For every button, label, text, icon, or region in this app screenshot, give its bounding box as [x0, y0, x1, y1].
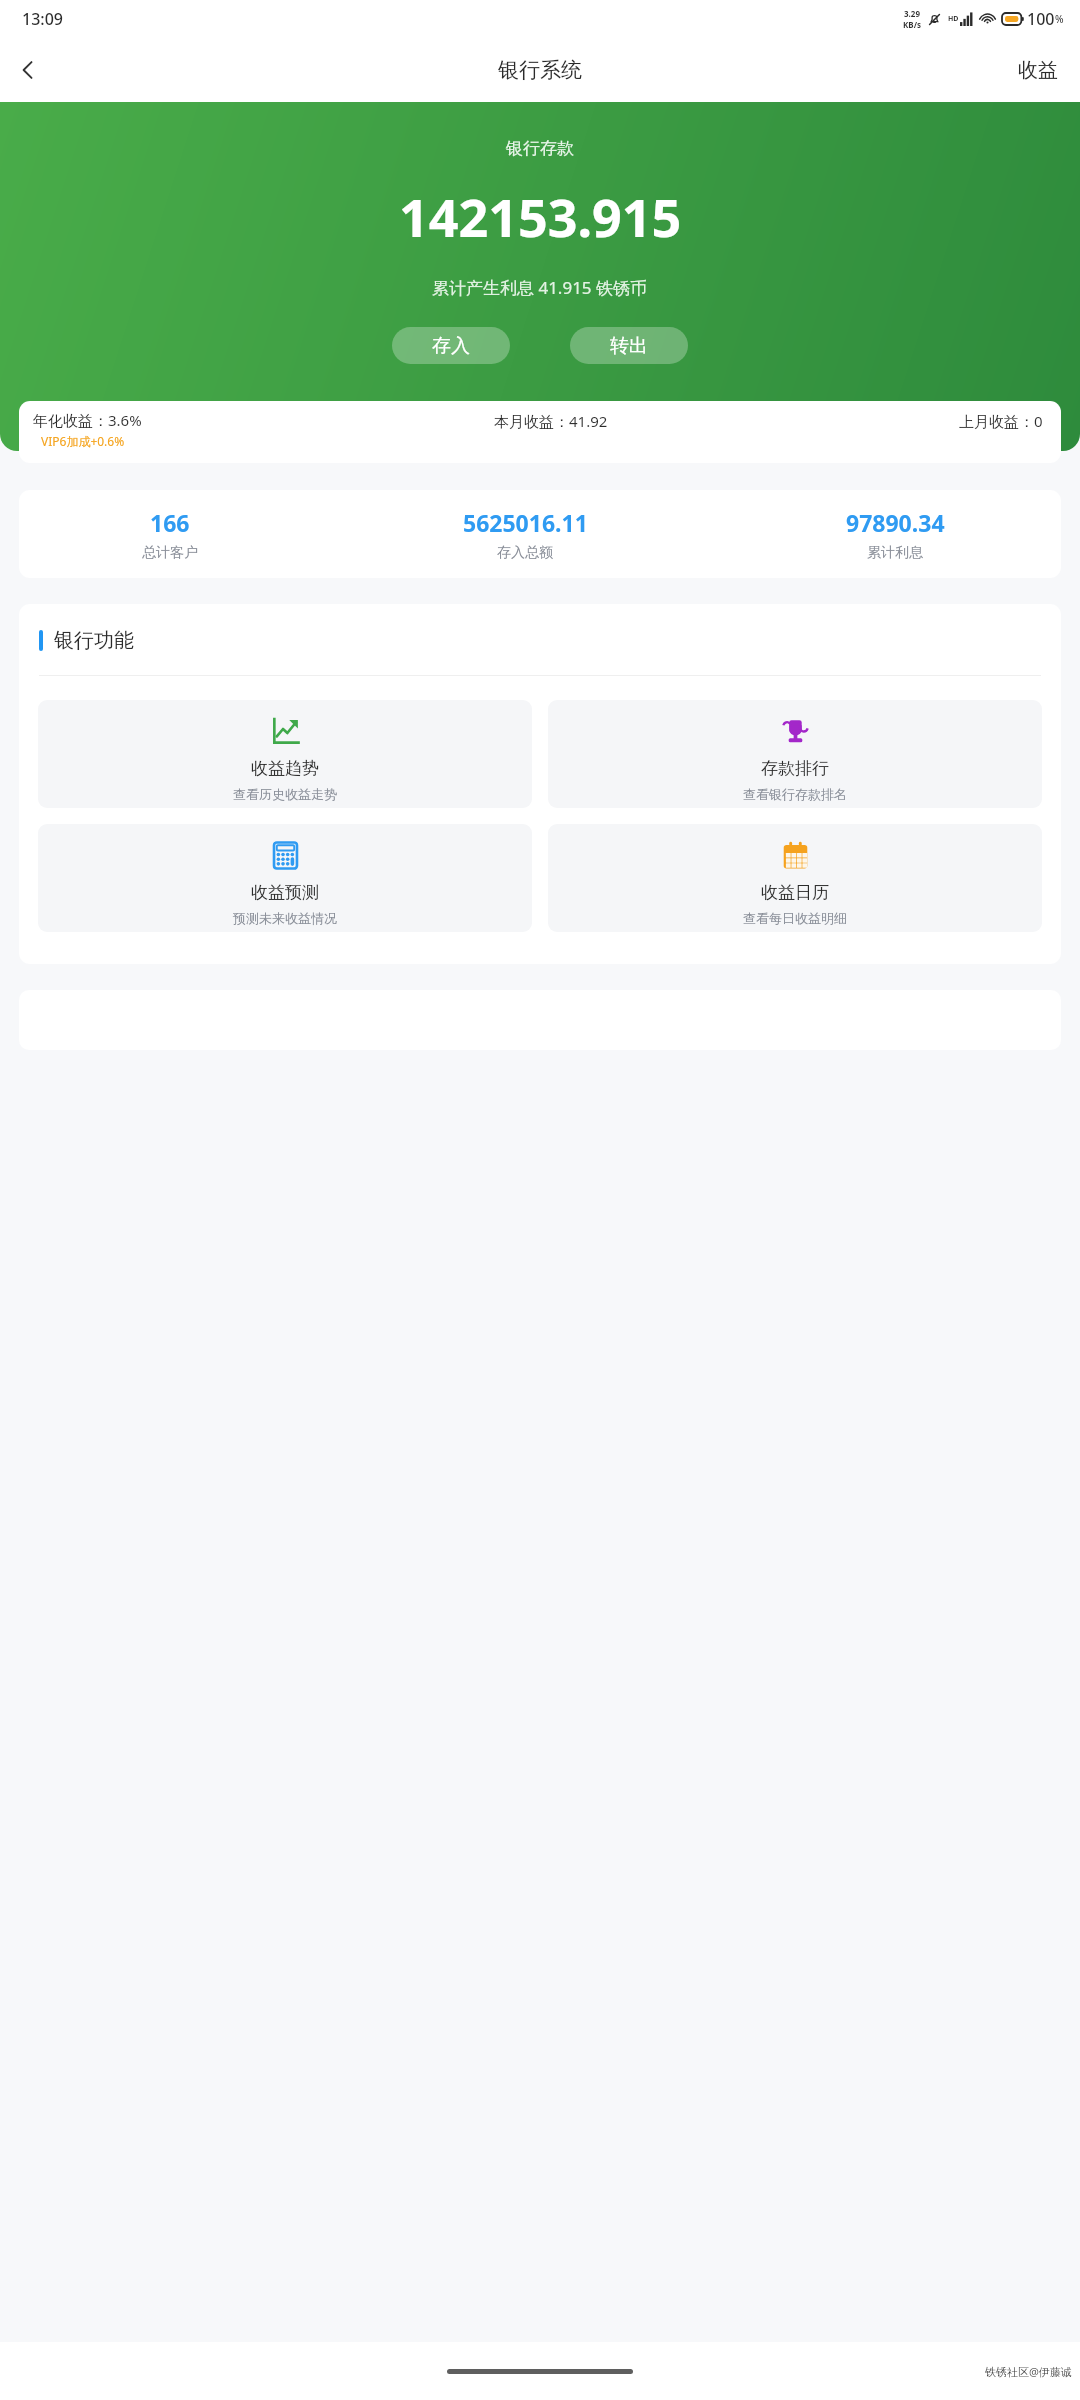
- staticText: VIP6加成+0.6%: [41, 433, 125, 449]
- staticText: 查看历史收益走势: [233, 786, 337, 802]
- staticText: 银行系统: [498, 57, 582, 83]
- staticText: 3.29: [904, 8, 920, 19]
- staticText: 上月收益：0: [959, 411, 1043, 431]
- staticText: 查看每日收益明细: [743, 910, 847, 926]
- staticText: 查看银行存款排名: [743, 786, 847, 802]
- staticText: 总计客户: [142, 544, 198, 562]
- staticText: 预测未来收益情况: [233, 910, 337, 926]
- staticText: 166: [150, 507, 190, 538]
- button[interactable]: 存入: [392, 327, 510, 364]
- staticText: 银行功能: [54, 628, 134, 653]
- staticText: 累计利息: [867, 544, 923, 562]
- staticText: 收益日历: [761, 882, 829, 903]
- staticText: 收益预测: [251, 882, 319, 903]
- button[interactable]: 收益: [996, 44, 1080, 97]
- staticText: %: [1055, 12, 1064, 26]
- staticText: 本月收益：41.92: [494, 411, 608, 431]
- button[interactable]: 收益预测: [38, 824, 532, 932]
- button[interactable]: 转出: [570, 327, 688, 364]
- staticText: 铁锈社区@伊藤诚: [985, 2364, 1072, 2379]
- staticText: 100: [1027, 8, 1055, 30]
- button[interactable]: 收益日历: [548, 824, 1042, 932]
- staticText: 97890.34: [846, 507, 945, 538]
- staticText: 转出: [610, 334, 648, 358]
- staticText: 累计产生利息 41.915 铁锈币: [432, 276, 648, 299]
- staticText: 13:09: [22, 8, 63, 30]
- staticText: 存款排行: [761, 758, 829, 779]
- button[interactable]: 收益趋势: [38, 700, 532, 808]
- staticText: 5625016.11: [463, 507, 588, 538]
- staticText: KB/s: [903, 19, 921, 30]
- staticText: 142153.915: [399, 181, 682, 252]
- staticText: 收益趋势: [251, 758, 319, 779]
- staticText: 存入总额: [497, 544, 553, 562]
- staticText: HD: [948, 14, 959, 24]
- staticText: 年化收益：3.6%: [33, 410, 142, 430]
- staticText: 收益: [1018, 58, 1058, 83]
- staticText: 银行存款: [506, 138, 574, 159]
- staticText: 存入: [432, 334, 470, 358]
- button[interactable]: 存款排行: [548, 700, 1042, 808]
- button[interactable]: 返回: [0, 42, 56, 98]
